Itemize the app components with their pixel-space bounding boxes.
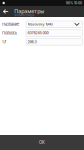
button[interactable]: Back	[0, 6, 11, 17]
staticText: Krasovsky 1940	[27, 22, 52, 26]
staticText: Полуось	[2, 31, 17, 35]
staticText: OK	[39, 140, 45, 145]
staticText: 1/f	[2, 39, 6, 44]
staticText: 10:00	[74, 1, 82, 5]
staticText: Название	[2, 22, 19, 27]
staticText: 6378245.000	[27, 31, 48, 35]
staticText: эллипсоида	[14, 13, 34, 17]
staticText: Параметры	[14, 8, 44, 14]
button[interactable]: OK	[0, 135, 84, 150]
button[interactable]: 6378245.000	[26, 30, 82, 36]
staticText: 90%	[66, 1, 73, 5]
staticText: 298.3	[27, 40, 36, 44]
button[interactable]: Krasovsky 1940	[26, 21, 82, 27]
button[interactable]: 298.3	[26, 39, 82, 45]
